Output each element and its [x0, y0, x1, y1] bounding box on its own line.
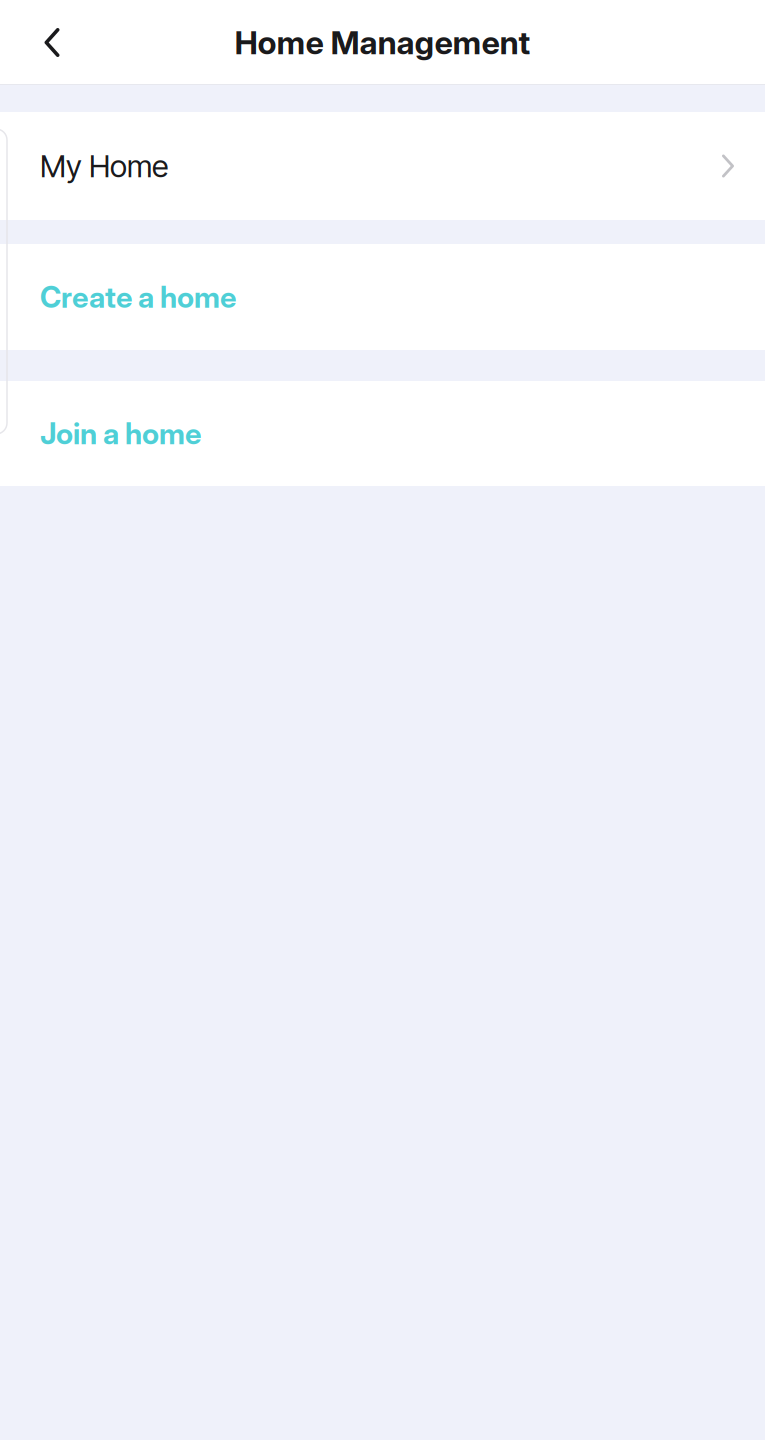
button[interactable]: Back [21, 11, 83, 73]
button[interactable]: Create a home [0, 244, 765, 350]
staticText: Home Management [234, 23, 530, 62]
button[interactable]: Join a home [0, 381, 765, 486]
staticText: My Home [40, 147, 168, 184]
staticText: Join a home [40, 416, 201, 451]
button[interactable]: My Home [0, 112, 765, 220]
staticText: Create a home [40, 279, 236, 315]
